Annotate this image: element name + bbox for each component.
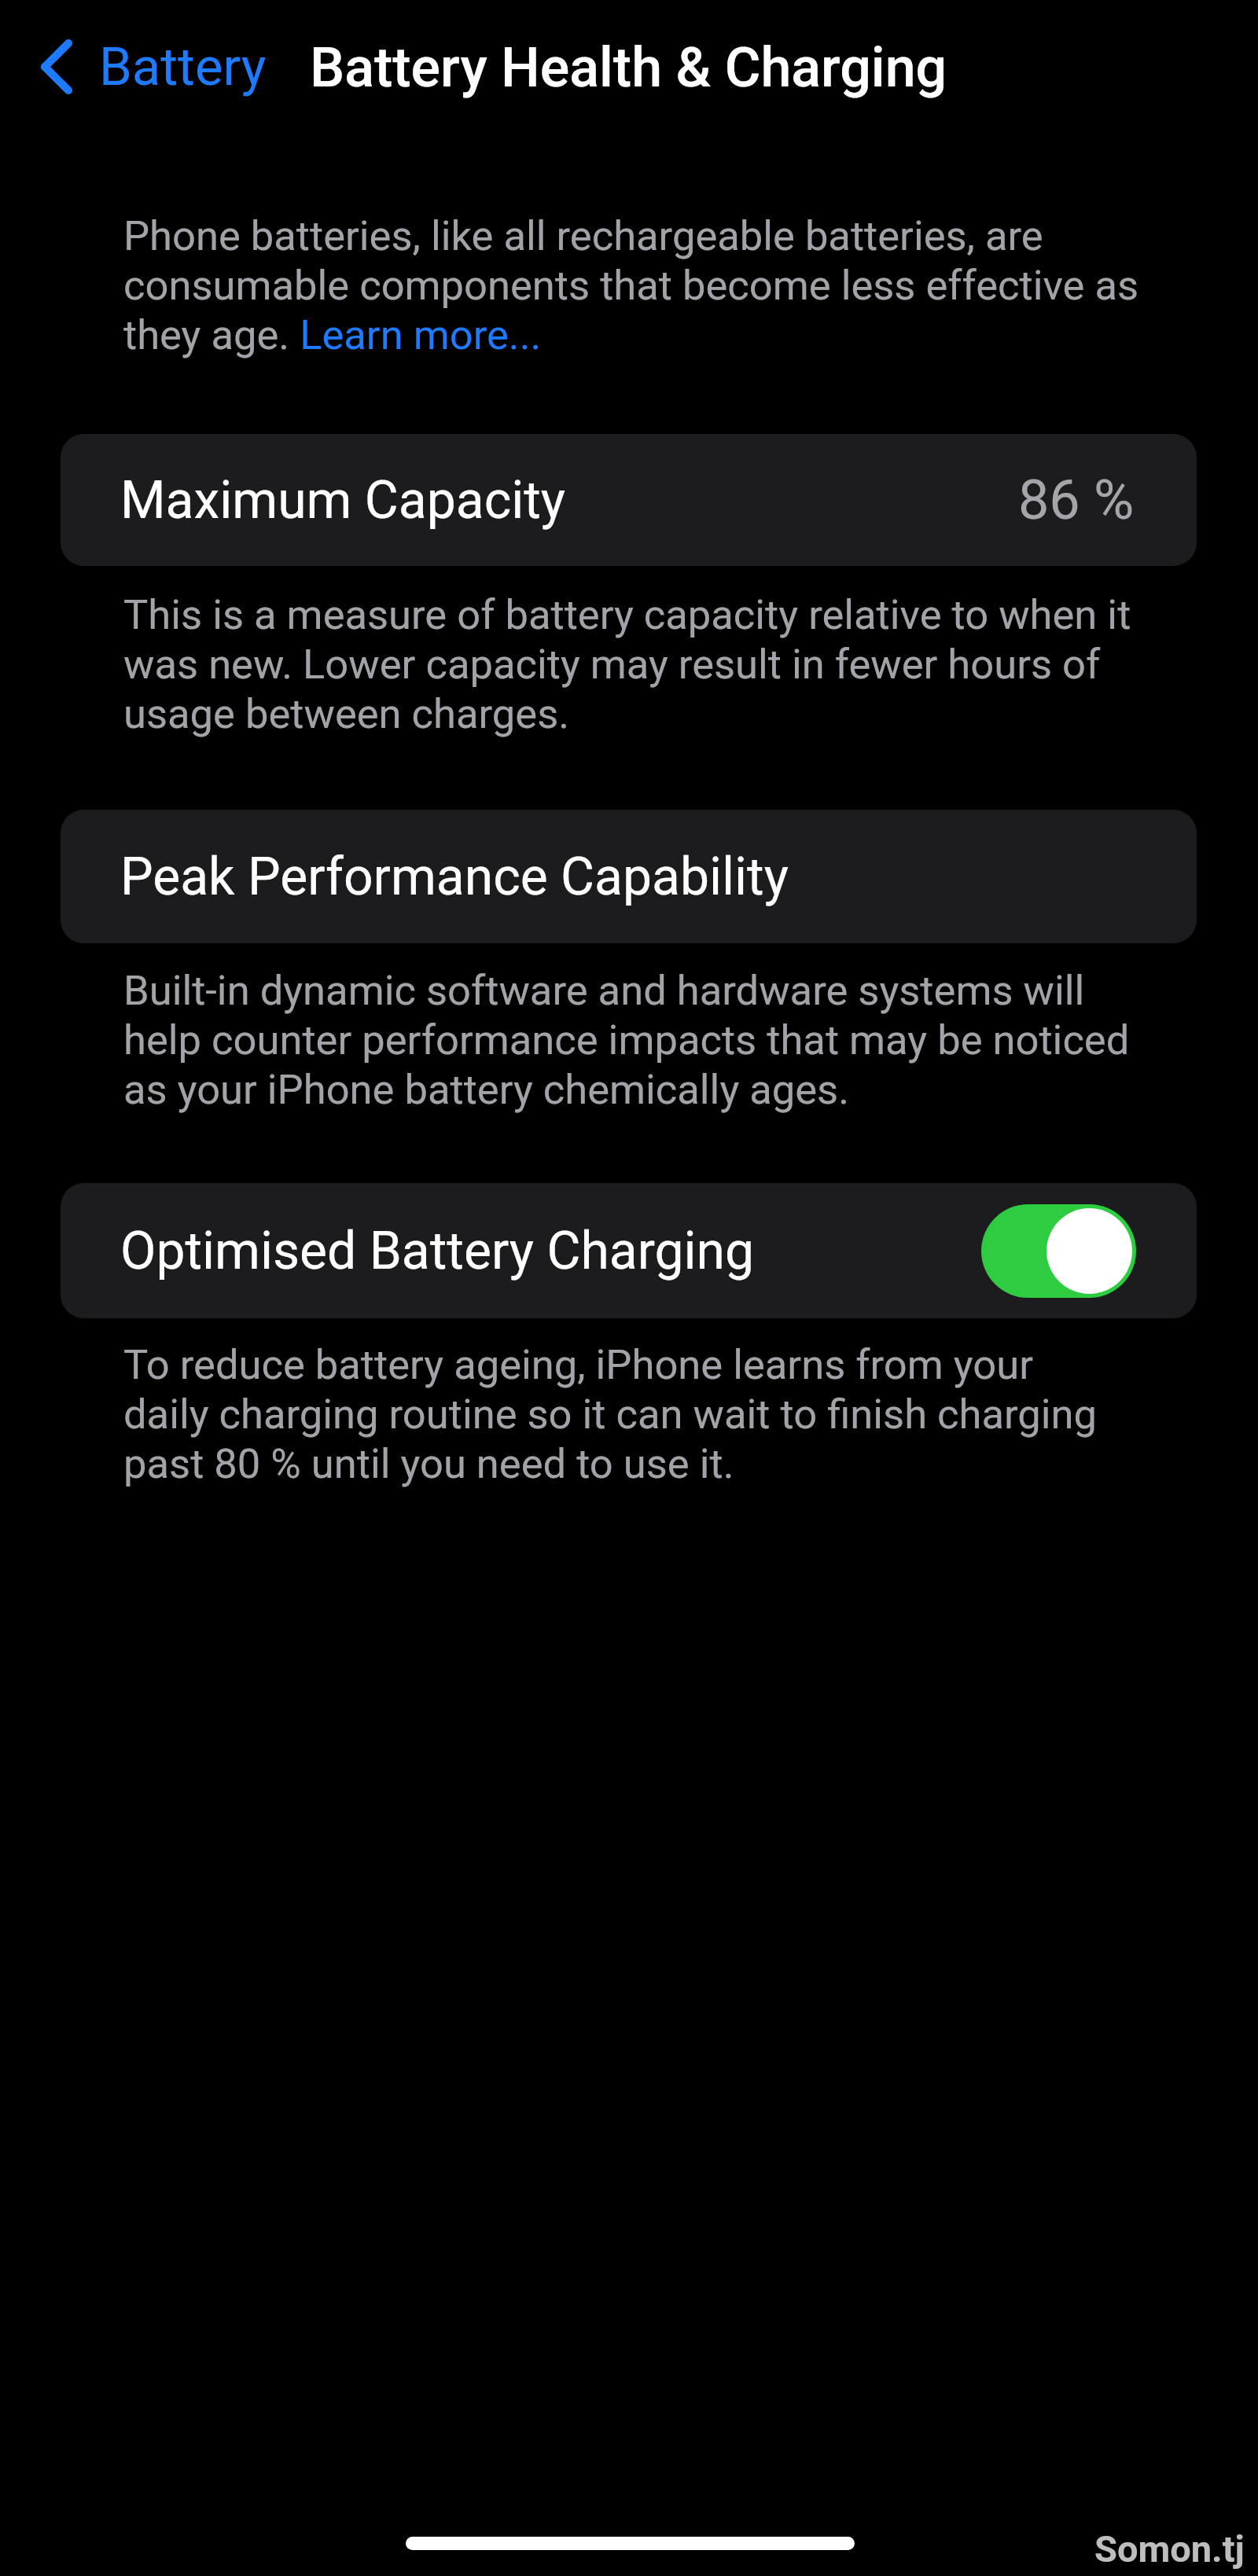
staticText: Optimised Battery Charging [120, 1221, 755, 1281]
button[interactable]: Learn more... [301, 313, 540, 357]
button[interactable]: Battery [31, 13, 284, 120]
staticText: Peak Performance Capability [120, 847, 789, 907]
staticText: Battery [99, 36, 267, 98]
button[interactable]: Maximum Capacity [61, 434, 1197, 566]
staticText: This is a measure of battery capacity re… [123, 590, 1139, 738]
button[interactable]: Peak Performance Capability [61, 810, 1197, 943]
staticText: Somon.tj [1094, 2527, 1245, 2570]
staticText: Phone batteries, like all rechargeable b… [123, 211, 1139, 359]
staticText: Maximum Capacity [120, 470, 566, 531]
staticText: Battery Health & Charging [310, 35, 947, 100]
staticText: Built-in dynamic software and hardware s… [123, 966, 1139, 1114]
staticText: To reduce battery ageing, iPhone learns … [123, 1340, 1113, 1488]
staticText: 86 % [1018, 468, 1135, 532]
button[interactable]: Optimised Battery Charging [981, 1204, 1136, 1298]
button[interactable]: Optimised Battery Charging [61, 1183, 1197, 1318]
